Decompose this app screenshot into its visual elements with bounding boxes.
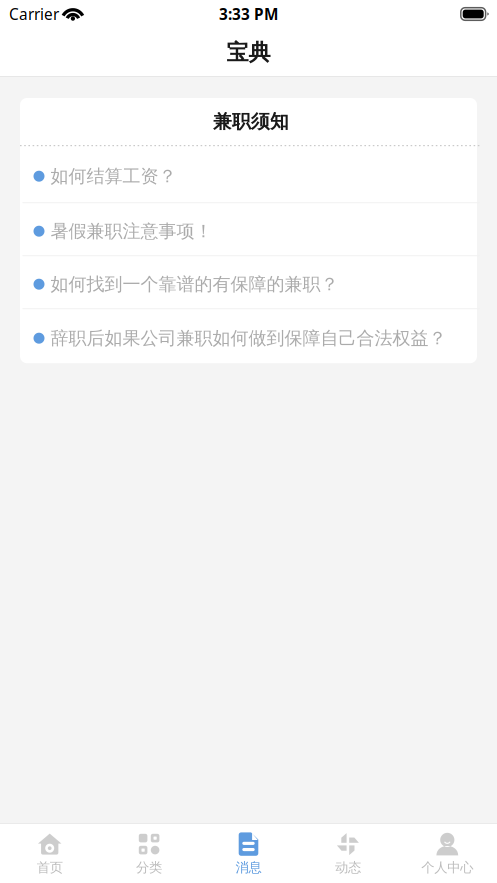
button[interactable]: 如何找到一个靠谱的有保障的兼职？: [22, 256, 479, 309]
button[interactable]: 动态: [298, 824, 398, 882]
button[interactable]: 消息: [199, 824, 298, 882]
staticText: 如何找到一个靠谱的有保障的兼职？: [50, 273, 338, 296]
button[interactable]: 首页: [0, 824, 99, 882]
staticText: 3:33 PM: [219, 4, 278, 24]
staticText: 如何结算工资？: [50, 165, 176, 188]
button[interactable]: 分类: [99, 824, 199, 882]
staticText: 分类: [136, 859, 162, 876]
staticText: 兼职须知: [213, 110, 289, 133]
button[interactable]: 辞职后如果公司兼职如何做到保障自己合法权益？: [22, 309, 479, 363]
staticText: 暑假兼职注意事项！: [50, 220, 212, 243]
staticText: 动态: [335, 859, 361, 876]
staticText: 消息: [235, 859, 261, 876]
staticText: 宝典: [226, 39, 270, 66]
staticText: Carrier: [9, 4, 59, 24]
staticText: 辞职后如果公司兼职如何做到保障自己合法权益？: [50, 327, 446, 350]
button[interactable]: 如何结算工资？: [22, 146, 479, 203]
staticText: 个人中心: [421, 859, 473, 876]
button[interactable]: 暑假兼职注意事项！: [22, 203, 479, 256]
staticText: 首页: [37, 859, 63, 876]
button[interactable]: 个人中心: [398, 824, 497, 882]
